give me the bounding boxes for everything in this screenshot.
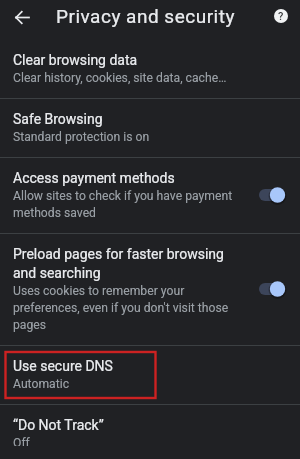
staticText: Automatic [13,377,70,391]
button[interactable]: Preload pages for faster browsing and se… [0,234,300,345]
button[interactable]: Access payment methods [0,158,300,233]
button[interactable]: “Do Not Track” [0,405,300,459]
button[interactable]: Clear browsing data [0,40,300,98]
button[interactable]: Use secure DNS [0,346,300,404]
staticText: Off [13,436,30,446]
staticText: Clear history, cookies, site data, cache… [13,71,227,85]
staticText: Clear browsing data [13,52,138,68]
staticText: Preload pages for faster browsing and se… [13,246,236,281]
staticText: “Do Not Track” [13,417,104,433]
staticText: Uses cookies to remember your preference… [13,284,236,332]
staticText: Standard protection is on [13,130,150,144]
staticText: Privacy and security [56,5,235,27]
staticText: ? [278,10,284,23]
staticText: Allow sites to check if you have payment… [13,189,236,220]
staticText: Access payment methods [13,170,175,186]
staticText: Safe Browsing [13,111,103,127]
staticText: Use secure DNS [13,358,113,374]
button[interactable]: Help [263,0,299,34]
button[interactable]: Toggle setting, on [259,186,285,204]
button[interactable]: Back [4,0,40,35]
button[interactable]: Toggle setting, on [259,280,285,298]
button[interactable]: Safe Browsing [0,99,300,157]
